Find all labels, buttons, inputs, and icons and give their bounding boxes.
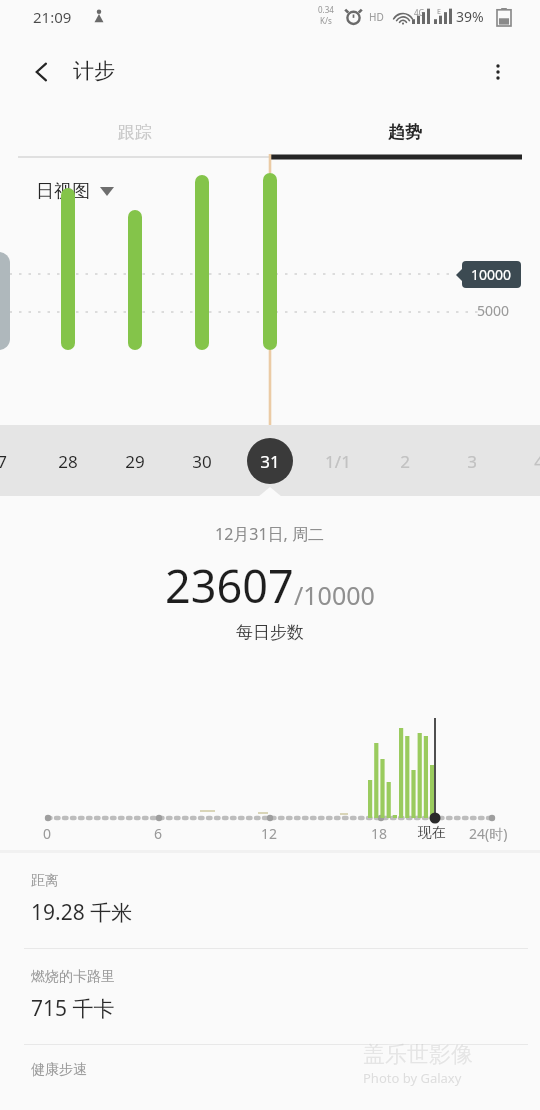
staticText: 每日步数 — [236, 622, 304, 643]
button[interactable]: 健康步速 — [0, 1045, 540, 1105]
button[interactable]: 日视图 — [36, 180, 114, 203]
button[interactable]: 跟踪 — [0, 104, 270, 160]
staticText: 19.28 千米 — [31, 898, 133, 927]
staticText: 1/1 — [325, 450, 351, 473]
staticText: 现在 — [418, 824, 446, 842]
staticText: 6 — [154, 824, 163, 843]
staticText: 7 — [0, 450, 7, 473]
button[interactable]: More options — [474, 48, 522, 96]
button[interactable]: 0 — [0, 670, 540, 850]
staticText: Photo by Galaxy — [363, 1069, 462, 1087]
button[interactable]: 29 — [109, 435, 161, 487]
staticText: 盖乐世影像 — [362, 1040, 472, 1068]
staticText: 燃烧的卡路里 — [31, 968, 115, 986]
button[interactable]: 距离 — [0, 853, 540, 948]
button[interactable]: 28 — [42, 435, 94, 487]
button[interactable]: 30 — [176, 435, 228, 487]
staticText: 计步 — [73, 58, 115, 84]
button[interactable]: 31 — [244, 435, 296, 487]
staticText: 日视图 — [36, 180, 90, 203]
button[interactable]: 2 — [379, 435, 431, 487]
button[interactable]: 4 — [513, 435, 540, 487]
staticText: 2 — [400, 450, 410, 473]
button[interactable]: 燃烧的卡路里 — [0, 949, 540, 1044]
staticText: Photo by Galaxy — [362, 1068, 461, 1086]
staticText: 0.34 — [318, 4, 334, 15]
staticText: 5000 — [477, 301, 510, 320]
staticText: /10000 — [294, 578, 375, 612]
staticText: 18 — [371, 824, 388, 843]
staticText: K/s — [320, 15, 332, 26]
button[interactable]: Back — [18, 48, 66, 96]
staticText: 12月31日, 周二 — [215, 523, 325, 545]
staticText: 4 — [534, 450, 540, 473]
staticText: 28 — [58, 450, 78, 473]
staticText: 715 千卡 — [31, 994, 115, 1023]
staticText: 31 — [260, 450, 280, 473]
staticText: 21:09 — [33, 7, 72, 27]
staticText: 30 — [192, 450, 212, 473]
staticText: 12 — [261, 824, 278, 843]
button[interactable]: 3 — [446, 435, 498, 487]
staticText: 健康步速 — [31, 1061, 87, 1079]
staticText: 趋势 — [388, 122, 422, 143]
staticText: 23607 — [165, 555, 294, 616]
staticText: HD — [369, 10, 384, 24]
button[interactable]: 趋势 — [270, 104, 540, 160]
staticText: 3 — [467, 450, 477, 473]
button[interactable]: 1/1 — [312, 435, 364, 487]
staticText: 0 — [43, 824, 52, 843]
staticText: E — [437, 7, 441, 17]
staticText: 39% — [456, 7, 484, 26]
staticText: 24(时) — [469, 824, 508, 843]
staticText: 距离 — [31, 872, 59, 890]
staticText: 跟踪 — [118, 122, 152, 143]
staticText: 29 — [125, 450, 145, 473]
staticText: 盖乐世影像 — [363, 1041, 473, 1069]
staticText: 4G — [414, 7, 425, 18]
button[interactable]: 7 — [0, 435, 28, 487]
staticText: 10000 — [471, 265, 512, 284]
